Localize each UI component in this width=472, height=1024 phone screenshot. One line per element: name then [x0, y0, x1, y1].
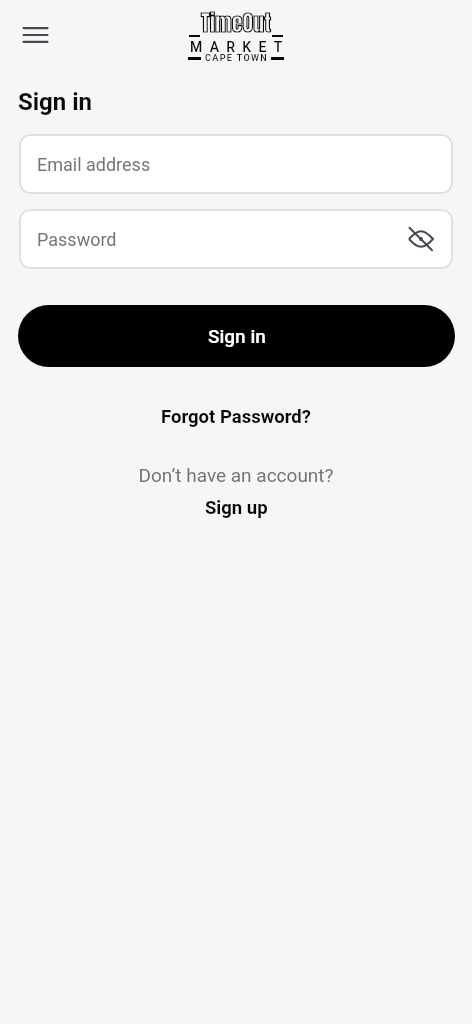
staticText: CAPE TOWN: [205, 53, 269, 64]
staticText: Password: [37, 229, 117, 250]
staticText: Sign in: [18, 88, 93, 116]
staticText: Sign in: [208, 325, 266, 347]
staticText: Don’t have an account?: [138, 464, 334, 486]
button[interactable]: Sign up: [189, 494, 284, 522]
button[interactable]: Forgot Password?: [147, 400, 325, 434]
button[interactable]: Show password: [406, 224, 436, 254]
button[interactable]: Email address: [19, 134, 453, 194]
staticText: TimeOut: [201, 6, 271, 39]
staticText: MARKET: [190, 39, 290, 55]
staticText: Email address: [37, 154, 151, 175]
staticText: Sign up: [205, 497, 268, 519]
button[interactable]: Menu: [13, 13, 57, 57]
button[interactable]: Password: [19, 209, 453, 269]
button[interactable]: Sign in: [18, 305, 455, 367]
staticText: Forgot Password?: [161, 406, 311, 428]
